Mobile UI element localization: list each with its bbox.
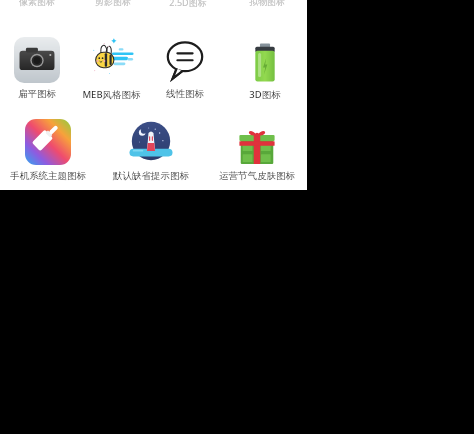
staticText: 扁平图标	[18, 88, 56, 100]
other: Flat camera icon	[14, 37, 60, 83]
button[interactable]: Line style chat icon	[148, 36, 222, 100]
button[interactable]: 3D battery icon	[222, 36, 307, 101]
button[interactable]: Default empty state icon	[95, 118, 207, 182]
staticText: 手机系统主题图标	[10, 170, 86, 182]
other: Phone system theme icon	[25, 119, 71, 165]
staticText: 线性图标	[166, 88, 204, 100]
other: MEB style bee icon	[87, 36, 135, 84]
staticText: MEB风格图标	[82, 88, 141, 101]
staticText: 3D图标	[249, 88, 281, 101]
button[interactable]: MEB style bee icon	[74, 36, 148, 101]
staticText: 剪影图标	[95, 0, 131, 7]
other: 3D battery icon	[243, 38, 287, 82]
other: Line style chat icon	[165, 40, 205, 80]
button[interactable]: Phone system theme icon	[0, 118, 95, 182]
staticText: 默认缺省提示图标	[113, 170, 189, 182]
button[interactable]: Seasonal operations skin icon	[207, 118, 307, 182]
other: Seasonal operations skin icon	[235, 120, 279, 164]
other: Default empty state icon	[127, 118, 175, 166]
staticText: 像素图标	[19, 0, 55, 7]
staticText: 拟物图标	[249, 0, 285, 7]
button[interactable]: Flat camera icon	[0, 36, 74, 100]
staticText: 运营节气皮肤图标	[219, 170, 295, 182]
staticText: 2.5D图标	[169, 0, 207, 8]
